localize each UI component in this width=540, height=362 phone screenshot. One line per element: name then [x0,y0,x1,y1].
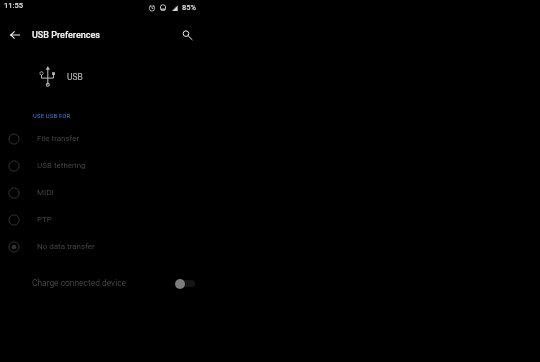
staticText: No data transfer [37,242,95,251]
staticText: PTP [37,215,52,224]
button[interactable]: USB tethering [0,152,205,179]
staticText: USB [67,72,83,82]
button[interactable]: File transfer [0,125,205,152]
button[interactable]: No data transfer [0,233,205,260]
button[interactable]: MIDI [0,179,205,206]
staticText: USB tethering [37,161,86,170]
staticText: 85% [182,3,197,12]
button[interactable]: Charge connected device [0,268,205,298]
button[interactable]: PTP [0,206,205,233]
staticText: MIDI [37,188,54,197]
staticText: USB Preferences [32,30,100,41]
button[interactable]: Navigate up [4,24,26,46]
staticText: USE USB FOR [33,113,71,120]
staticText: Charge connected device [32,278,127,288]
staticText: File transfer [37,134,80,143]
button[interactable]: Search [176,24,198,46]
staticText: 11:55 [4,1,24,10]
